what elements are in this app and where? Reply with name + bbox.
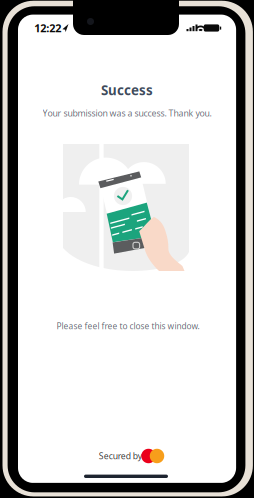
staticText: Your submission was a success. Thank you… [42, 107, 211, 119]
staticText: Secured by [99, 450, 142, 462]
staticText: Success [101, 81, 153, 99]
staticText: Please feel free to close this window. [56, 320, 199, 332]
staticText: 12:22 [34, 21, 61, 35]
